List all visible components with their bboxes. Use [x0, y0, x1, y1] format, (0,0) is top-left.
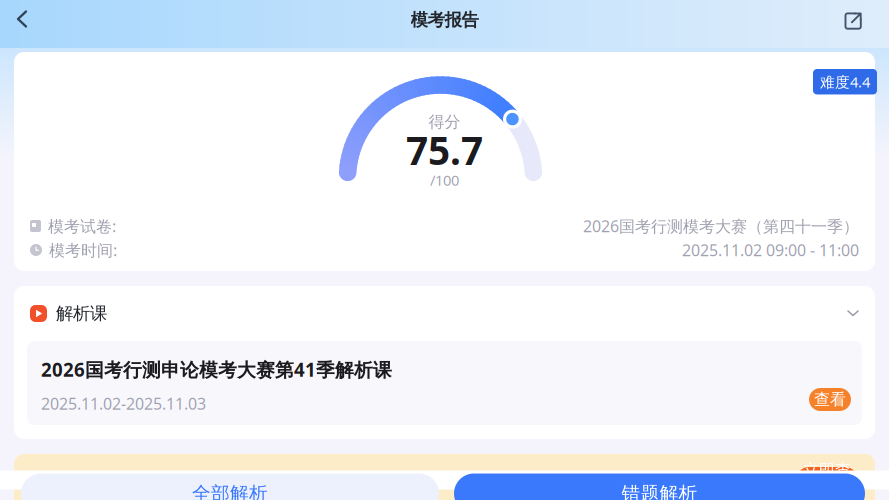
button[interactable]: 全部解析: [21, 473, 439, 500]
staticText: 会员专属模考报告: [66, 470, 202, 492]
button[interactable]: 2026国考行测申论模考大赛第41季解析课: [27, 341, 862, 425]
button[interactable]: Back: [7, 9, 37, 29]
staticText: 立即查看: [803, 460, 851, 500]
staticText: /100: [430, 170, 459, 190]
staticText: 2025.11.02-2025.11.03: [41, 393, 206, 414]
button[interactable]: Share: [838, 10, 868, 32]
button[interactable]: 解析课: [14, 286, 875, 341]
staticText: 全部解析: [192, 482, 268, 500]
button[interactable]: 错题解析: [454, 473, 865, 500]
staticText: 解析课: [56, 303, 107, 324]
staticText: 2026国考行测模考大赛（第四十一季）: [583, 215, 859, 237]
staticText: 模考报告: [410, 9, 478, 31]
staticText: 模考时间:: [49, 239, 117, 261]
staticText: 得分: [428, 112, 460, 132]
staticText: 75.7: [406, 124, 483, 176]
staticText: 2026国考行测申论模考大赛第41季解析课: [41, 357, 392, 382]
staticText: 2025.11.02 09:00 - 11:00: [682, 239, 859, 261]
staticText: 难度4.4: [820, 72, 870, 91]
staticText: 模考试卷:: [48, 215, 116, 237]
staticText: 错题解析: [621, 482, 697, 500]
button[interactable]: 会员专属模考报告: [14, 454, 875, 500]
staticText: 查看: [814, 390, 846, 409]
